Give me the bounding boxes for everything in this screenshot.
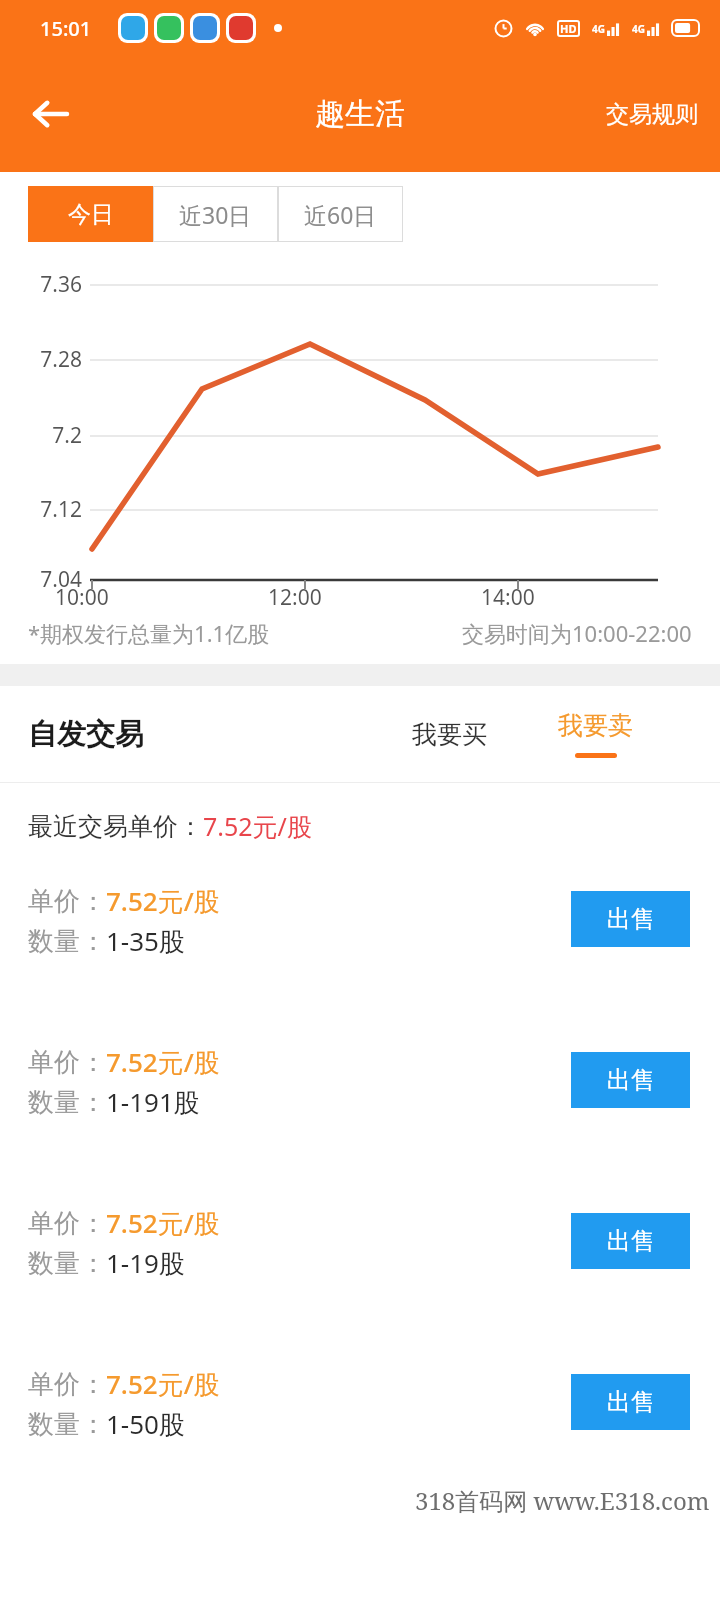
- staticText: 14:00: [481, 583, 535, 612]
- staticText: 单价：: [28, 1046, 106, 1079]
- button[interactable]: 单价：: [28, 869, 690, 1030]
- staticText: 7.28: [10, 345, 82, 374]
- staticText: 我要买: [412, 719, 487, 750]
- staticText: 7.52元/股: [106, 1044, 220, 1080]
- staticText: *期权发行总量为1.1亿股: [28, 618, 270, 648]
- staticText: 4G: [592, 22, 605, 36]
- staticText: 12:00: [268, 583, 322, 612]
- button[interactable]: 出售: [571, 1213, 690, 1269]
- button[interactable]: 近30日: [153, 186, 278, 242]
- button[interactable]: 我要买: [412, 686, 487, 782]
- staticText: 1-19股: [106, 1245, 185, 1281]
- staticText: 数量：: [28, 925, 106, 958]
- staticText: 数量：: [28, 1408, 106, 1441]
- staticText: 自发交易: [28, 716, 144, 753]
- button[interactable]: 近60日: [278, 186, 403, 242]
- staticText: 出售: [607, 1226, 655, 1256]
- staticText: 10:00: [55, 583, 109, 612]
- staticText: 近60日: [304, 199, 377, 230]
- staticText: 7.04: [10, 565, 82, 594]
- staticText: 最近交易单价：: [28, 811, 203, 842]
- button[interactable]: 单价：: [28, 1191, 690, 1352]
- staticText: 趣生活: [315, 95, 405, 133]
- staticText: 今日: [68, 200, 114, 229]
- staticText: HD: [560, 21, 577, 36]
- staticText: 4G: [632, 22, 645, 36]
- staticText: 7.2: [10, 421, 82, 450]
- staticText: 单价：: [28, 885, 106, 918]
- staticText: 数量：: [28, 1086, 106, 1119]
- button[interactable]: 交易规则: [606, 100, 698, 129]
- staticText: 7.12: [10, 495, 82, 524]
- button[interactable]: 今日: [28, 186, 153, 242]
- staticText: 7.52元/股: [203, 809, 312, 843]
- staticText: 近30日: [179, 199, 252, 230]
- staticText: 7.52元/股: [106, 1205, 220, 1241]
- button[interactable]: 出售: [571, 891, 690, 947]
- staticText: 1-191股: [106, 1084, 200, 1120]
- staticText: 7.36: [10, 270, 82, 299]
- staticText: 318首码网 www.E318.com: [415, 1484, 710, 1517]
- button[interactable]: 单价：: [28, 1030, 690, 1191]
- staticText: 单价：: [28, 1207, 106, 1240]
- staticText: 7.52元/股: [106, 883, 220, 919]
- staticText: 单价：: [28, 1368, 106, 1401]
- staticText: 出售: [607, 1065, 655, 1095]
- staticText: 我要卖: [558, 710, 633, 741]
- button[interactable]: 单价：: [28, 1352, 690, 1472]
- staticText: 出售: [607, 904, 655, 934]
- staticText: 数量：: [28, 1247, 106, 1280]
- staticText: 1-50股: [106, 1406, 185, 1442]
- button[interactable]: 我要卖: [558, 686, 633, 782]
- button[interactable]: 出售: [571, 1374, 690, 1430]
- staticText: 7.52元/股: [106, 1366, 220, 1402]
- staticText: 1-35股: [106, 923, 185, 959]
- staticText: 15:01: [40, 15, 92, 42]
- staticText: 出售: [607, 1387, 655, 1417]
- staticText: 交易时间为10:00-22:00: [462, 618, 692, 648]
- button[interactable]: 出售: [571, 1052, 690, 1108]
- button[interactable]: Back: [18, 82, 82, 146]
